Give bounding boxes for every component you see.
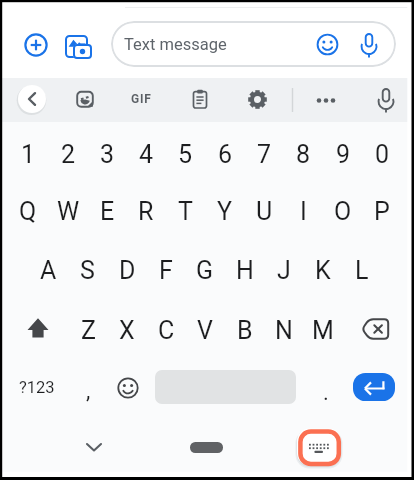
staticText: Z [81, 316, 96, 345]
staticText: 4 [139, 140, 154, 169]
staticText: 3 [100, 140, 115, 169]
button[interactable] [18, 85, 46, 113]
button[interactable]: W [48, 186, 88, 236]
button[interactable]: 1 [8, 129, 48, 179]
button[interactable]: 5 [165, 129, 205, 179]
staticText: P [374, 197, 390, 226]
button[interactable]: B [225, 305, 265, 355]
button[interactable]: 3 [87, 129, 127, 179]
button[interactable]: N [264, 305, 304, 355]
button[interactable]: 4 [126, 129, 166, 179]
button[interactable]: S [67, 245, 107, 295]
button[interactable]: Y [205, 186, 245, 236]
button[interactable] [355, 315, 395, 343]
button[interactable]: U [244, 186, 284, 236]
button[interactable] [76, 90, 95, 109]
staticText: N [275, 316, 293, 345]
button[interactable] [116, 376, 140, 400]
staticText: 5 [178, 140, 193, 169]
staticText: L [355, 256, 369, 285]
staticText: K [315, 256, 331, 285]
staticText: T [178, 197, 193, 226]
button[interactable] [357, 31, 381, 59]
staticText: G [196, 256, 214, 285]
staticText: 8 [296, 140, 311, 169]
button[interactable]: 6 [205, 129, 245, 179]
staticText: C [158, 316, 175, 345]
staticText: J [277, 256, 291, 285]
button[interactable]: K [303, 245, 343, 295]
staticText: Q [19, 197, 37, 226]
button[interactable]: Z [68, 305, 108, 355]
staticText: , [86, 378, 91, 404]
button[interactable]: M [303, 305, 343, 355]
button[interactable]: J [264, 245, 304, 295]
button[interactable]: 8 [283, 129, 323, 179]
staticText: 2 [61, 140, 76, 169]
staticText: M [312, 316, 334, 345]
staticText: B [237, 316, 253, 345]
staticText: R [138, 197, 154, 226]
button[interactable]: O [323, 186, 363, 236]
button[interactable]: C [146, 305, 186, 355]
button[interactable]: D [107, 245, 147, 295]
button[interactable]: GIF [119, 84, 163, 114]
button[interactable]: ?123 [10, 365, 64, 409]
button[interactable] [315, 32, 340, 57]
staticText: Text message [124, 35, 227, 54]
staticText: 7 [257, 140, 272, 169]
staticText: H [236, 256, 254, 285]
button[interactable] [192, 89, 208, 110]
button[interactable] [24, 33, 48, 57]
staticText: GIF [131, 92, 152, 106]
staticText: O [334, 197, 352, 226]
button[interactable]: G [185, 245, 225, 295]
staticText: E [100, 197, 115, 226]
staticText: D [119, 256, 136, 285]
button[interactable] [353, 373, 395, 401]
staticText: A [40, 256, 57, 285]
staticText: . [323, 380, 329, 406]
button[interactable] [315, 91, 338, 108]
button[interactable] [374, 86, 398, 113]
staticText: V [197, 316, 213, 345]
button[interactable]: Text message [111, 21, 396, 67]
button[interactable]: 7 [244, 129, 284, 179]
staticText: F [159, 256, 173, 285]
button[interactable]: I [283, 186, 323, 236]
button[interactable]: H [225, 245, 265, 295]
button[interactable] [295, 427, 344, 469]
button[interactable]: 2 [48, 129, 88, 179]
button[interactable]: 0 [362, 129, 402, 179]
button[interactable]: F [146, 245, 186, 295]
staticText: X [119, 316, 135, 345]
button[interactable]: 9 [323, 129, 363, 179]
staticText: 6 [218, 140, 233, 169]
button[interactable]: L [342, 245, 382, 295]
staticText: Y [217, 197, 233, 226]
button[interactable] [190, 442, 223, 453]
staticText: 1 [21, 140, 36, 169]
button[interactable]: E [87, 186, 127, 236]
staticText: U [256, 197, 273, 226]
button[interactable] [82, 437, 106, 457]
staticText: I [300, 197, 307, 226]
button[interactable]: T [165, 186, 205, 236]
staticText: W [57, 197, 80, 226]
button[interactable]: . [309, 371, 343, 415]
button[interactable]: X [107, 305, 147, 355]
button[interactable]: Q [8, 186, 48, 236]
staticText: ?123 [19, 378, 55, 397]
button[interactable] [63, 33, 93, 60]
button[interactable]: R [126, 186, 166, 236]
button[interactable] [14, 304, 62, 352]
button[interactable] [248, 90, 267, 109]
button[interactable]: V [185, 305, 225, 355]
button[interactable]: A [28, 245, 68, 295]
button[interactable]: , [71, 369, 105, 413]
staticText: S [80, 256, 95, 285]
staticText: 9 [336, 140, 351, 169]
button[interactable]: P [362, 186, 402, 236]
staticText: 0 [375, 140, 390, 169]
